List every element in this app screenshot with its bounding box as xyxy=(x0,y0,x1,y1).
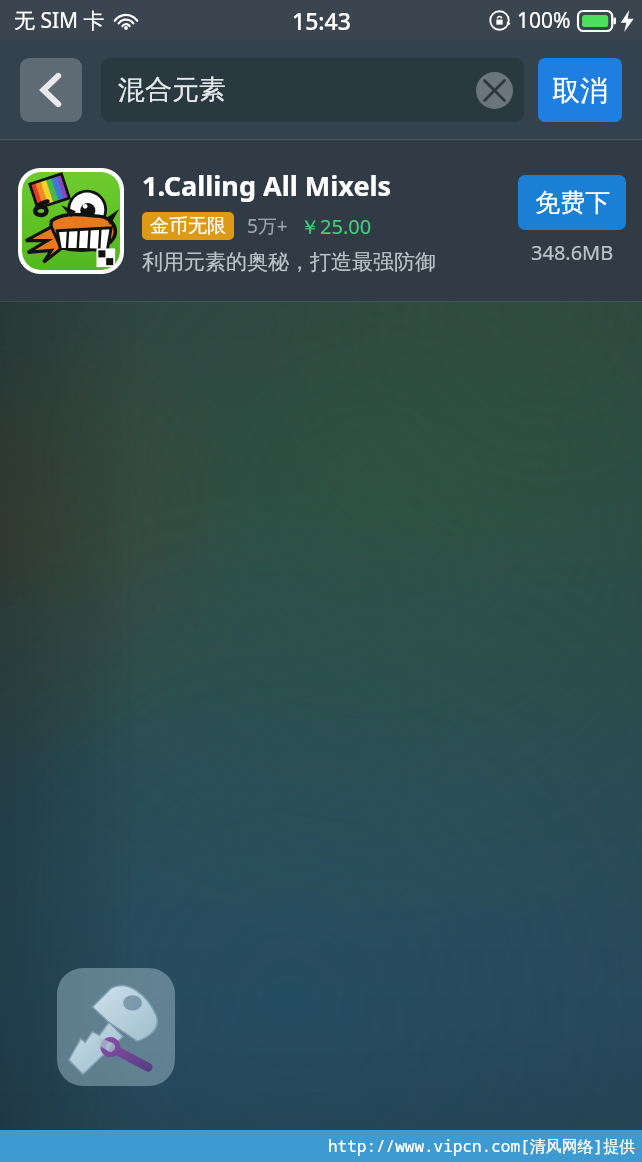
staticText: 混合元素 xyxy=(118,73,226,107)
button[interactable]: Key tool app xyxy=(57,968,175,1086)
staticText: 取消 xyxy=(552,73,608,108)
staticText: 100% xyxy=(517,6,571,35)
button[interactable]: 取消 xyxy=(538,58,622,122)
button[interactable]: 混合元素 xyxy=(101,58,524,122)
staticText: 利用元素的奥秘，打造最强防御 xyxy=(142,249,436,275)
button[interactable]: 1.Calling All Mixels xyxy=(0,140,642,301)
staticText: ￥25.00 xyxy=(300,213,372,240)
staticText: 5万+ xyxy=(247,213,288,239)
staticText: http://www.vipcn.com[清风网络]提供 xyxy=(328,1135,636,1157)
staticText: 无 SIM 卡 xyxy=(14,6,105,35)
staticText: 15:43 xyxy=(292,5,351,36)
staticText: 免费下 xyxy=(535,187,610,218)
button[interactable]: Clear text xyxy=(476,72,513,109)
staticText: 1.Calling All Mixels xyxy=(142,167,392,204)
button[interactable]: Back xyxy=(20,58,82,122)
staticText: 金币无限 xyxy=(150,214,226,238)
button[interactable]: 免费下 xyxy=(518,175,626,230)
staticText: 348.6MB xyxy=(531,239,614,266)
